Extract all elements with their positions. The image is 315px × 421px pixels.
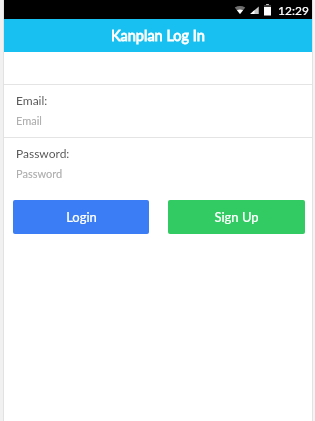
button[interactable]: Email: [4,85,312,137]
staticText: Password: [16,146,70,160]
button[interactable]: Sign Up [168,200,305,234]
other: Battery [264,4,271,16]
staticText: Email [16,114,42,127]
staticText: Password [16,167,63,180]
button[interactable]: Password: [4,138,312,190]
staticText: 12:29 [278,3,309,17]
other: Wi-Fi [234,4,246,15]
other: Signal [250,4,259,15]
staticText: Email: [16,93,48,107]
staticText: Sign Up [214,209,259,225]
staticText: Login [66,209,97,225]
staticText: Kanplan Log In [111,27,205,44]
button[interactable]: Kanplan Log In [4,19,312,52]
button[interactable]: Login [13,200,149,234]
